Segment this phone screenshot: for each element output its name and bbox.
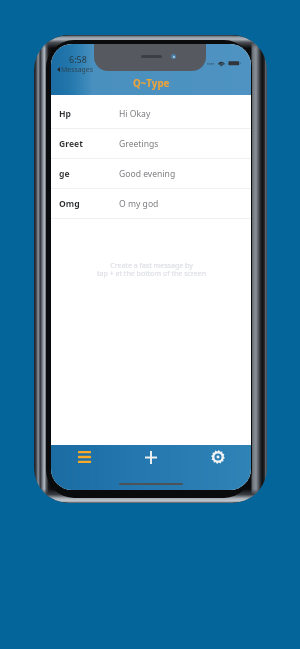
button[interactable]: New message <box>117 443 184 471</box>
button[interactable]: ge <box>51 159 251 189</box>
staticText: 6:58 <box>69 53 87 65</box>
staticText: Messages <box>61 65 94 74</box>
staticText: Greetings <box>119 138 159 150</box>
staticText: Omg <box>59 198 80 210</box>
button[interactable]: Menu <box>51 443 117 471</box>
staticText: Good evening <box>119 168 176 180</box>
staticText: ge <box>59 168 70 180</box>
staticText: O my god <box>119 198 159 210</box>
button[interactable]: Hp <box>51 99 251 129</box>
button[interactable]: Settings <box>184 443 251 471</box>
staticText: Greet <box>59 138 83 150</box>
staticText: Create a fast message by tap + at the bo… <box>97 260 206 278</box>
button[interactable]: Omg <box>51 189 251 219</box>
staticText: Hi Okay <box>119 108 151 120</box>
staticText: Q~Type <box>133 77 170 90</box>
staticText: Hp <box>59 108 72 120</box>
button[interactable]: Greet <box>51 129 251 159</box>
